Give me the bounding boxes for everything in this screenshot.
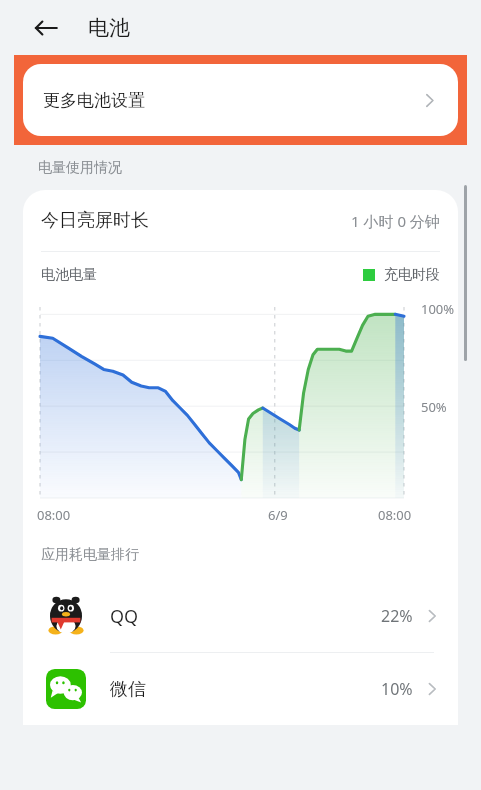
staticText: 6/9 (268, 506, 288, 524)
staticText: QQ (110, 604, 139, 629)
staticText: 1 小时 0 分钟 (351, 211, 440, 231)
staticText: 50% (421, 398, 447, 416)
staticText: 应用耗电量排行 (41, 546, 139, 564)
button[interactable]: Back (28, 10, 64, 46)
staticText: 更多电池设置 (43, 90, 145, 111)
staticText: 电池 (88, 15, 130, 41)
staticText: 10% (381, 678, 413, 700)
staticText: 微信 (110, 678, 146, 701)
button[interactable]: QQ (23, 580, 458, 652)
staticText: 今日亮屏时长 (41, 209, 149, 232)
staticText: 100% (421, 300, 455, 318)
staticText: 电池电量 (41, 266, 97, 284)
button[interactable]: 微信 (23, 653, 458, 725)
staticText: 22% (381, 605, 413, 627)
staticText: 充电时段 (384, 266, 440, 284)
staticText: 08:00 (378, 506, 412, 524)
button[interactable]: 更多电池设置 (23, 64, 458, 136)
staticText: 电量使用情况 (38, 159, 122, 177)
staticText: 08:00 (37, 506, 71, 524)
